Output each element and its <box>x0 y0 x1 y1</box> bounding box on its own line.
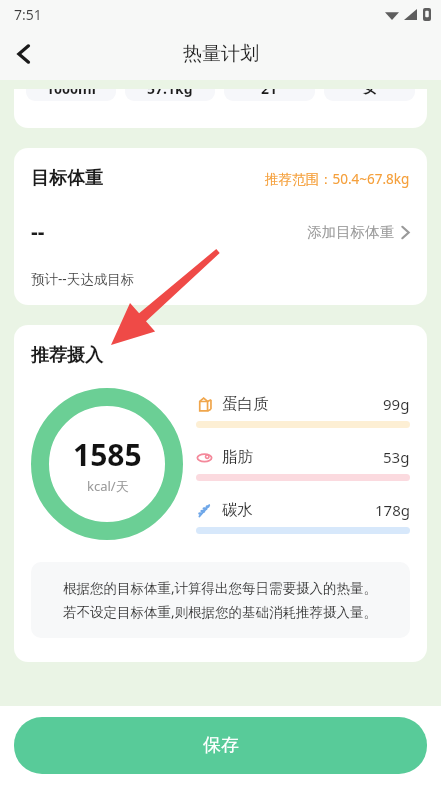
staticText: 脂肪 <box>222 447 253 467</box>
staticText: 添加目标体重 <box>307 223 394 241</box>
button[interactable]: 添加目标体重 <box>307 223 410 241</box>
staticText: -- <box>31 217 45 246</box>
staticText: 若不设定目标体重,则根据您的基础消耗推荐摄入量。 <box>63 603 378 621</box>
staticText: 推荐范围：50.4~67.8kg <box>265 170 410 188</box>
staticText: 根据您的目标体重,计算得出您每日需要摄入的热量。 <box>63 579 378 597</box>
staticText: 21 <box>261 89 278 98</box>
button[interactable]: 21 <box>224 89 315 101</box>
staticText: 1000ml <box>46 89 96 98</box>
staticText: 热量计划 <box>183 42 259 66</box>
staticText: 57.1kg <box>147 89 193 98</box>
staticText: 178g <box>375 500 410 520</box>
button[interactable]: 1000ml <box>14 89 427 128</box>
button[interactable]: 保存 <box>14 717 427 774</box>
staticText: 目标体重 <box>31 167 103 190</box>
staticText: 保存 <box>203 734 239 757</box>
button[interactable]: Back <box>0 30 48 78</box>
staticText: 1585 <box>73 434 142 475</box>
staticText: 女 <box>363 89 377 98</box>
staticText: kcal/天 <box>87 477 129 495</box>
staticText: 53g <box>383 447 410 467</box>
staticText: 预计--天达成目标 <box>31 270 135 288</box>
staticText: 99g <box>383 394 410 414</box>
staticText: 7:51 <box>14 5 42 24</box>
staticText: 碳水 <box>222 500 253 520</box>
button[interactable]: 57.1kg <box>125 89 215 101</box>
button[interactable]: 女 <box>324 89 415 101</box>
staticText: 蛋白质 <box>222 394 269 414</box>
button[interactable]: 1000ml <box>26 89 116 101</box>
staticText: 推荐摄入 <box>31 344 103 367</box>
